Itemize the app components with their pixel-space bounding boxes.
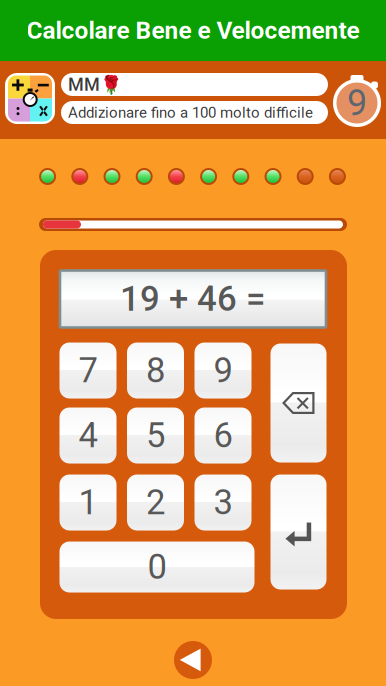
- staticText: 4: [78, 415, 97, 456]
- staticText: 3: [213, 482, 232, 523]
- staticText: Addizionare fino a 100 molto difficile: [68, 104, 313, 121]
- button[interactable]: Delete: [270, 343, 326, 462]
- staticText: 2: [146, 482, 165, 523]
- staticText: 5: [146, 415, 165, 456]
- staticText: 6: [213, 415, 232, 456]
- staticText: Calcolare Bene e Velocemente: [26, 16, 359, 45]
- staticText: 9: [347, 82, 367, 124]
- button[interactable]: 0: [59, 541, 254, 592]
- button[interactable]: 9: [194, 342, 251, 398]
- button[interactable]: Enter: [270, 474, 326, 589]
- staticText: 1: [78, 482, 97, 523]
- staticText: 0: [147, 547, 166, 587]
- button[interactable]: 7: [59, 342, 116, 398]
- button[interactable]: 3: [194, 474, 251, 530]
- staticText: 8: [146, 350, 165, 391]
- button[interactable]: 5: [127, 407, 184, 463]
- button[interactable]: 2: [127, 474, 184, 530]
- button[interactable]: 6: [194, 407, 251, 463]
- button[interactable]: 4: [59, 407, 116, 463]
- button[interactable]: 8: [127, 342, 184, 398]
- button[interactable]: 1: [59, 474, 116, 530]
- staticText: 19 + 46 =: [120, 279, 266, 319]
- button[interactable]: Back: [174, 641, 212, 679]
- staticText: MM🌹: [68, 74, 122, 95]
- staticText: 9: [213, 350, 232, 391]
- staticText: 7: [78, 350, 97, 391]
